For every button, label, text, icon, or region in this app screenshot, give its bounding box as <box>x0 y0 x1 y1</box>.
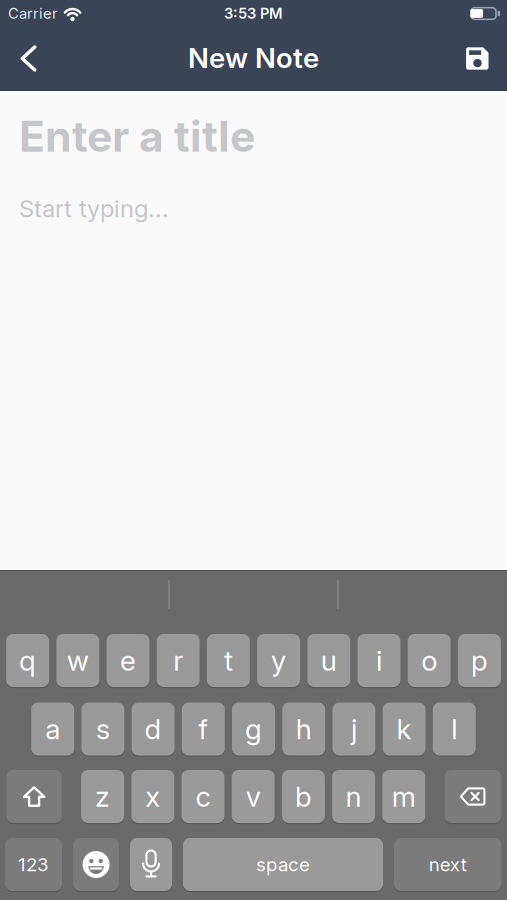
staticText: Enter a title <box>19 111 255 161</box>
staticText: x <box>145 780 160 813</box>
button[interactable]: m <box>382 770 425 823</box>
button[interactable]: j <box>332 702 375 755</box>
button[interactable]: b <box>282 770 325 823</box>
staticText: z <box>95 780 110 813</box>
staticText: n <box>346 780 362 813</box>
button[interactable]: o <box>408 634 451 687</box>
staticText: q <box>19 644 36 677</box>
staticText: j <box>351 712 357 745</box>
staticText: i <box>376 644 382 677</box>
button[interactable]: g <box>232 702 275 755</box>
button[interactable]: q <box>6 634 49 687</box>
staticText: c <box>195 780 210 813</box>
staticText: l <box>451 712 457 745</box>
button[interactable]: i <box>357 634 400 687</box>
button[interactable]: h <box>282 702 325 755</box>
button[interactable]: p <box>458 634 501 687</box>
staticText: h <box>296 712 312 745</box>
button[interactable]: Shift <box>6 770 62 823</box>
button[interactable]: z <box>81 770 124 823</box>
staticText: r <box>173 644 183 677</box>
staticText: d <box>145 712 162 745</box>
button[interactable]: s <box>81 702 124 755</box>
button[interactable]: Emoji <box>73 838 119 891</box>
staticText: f <box>198 712 208 745</box>
button[interactable]: r <box>157 634 200 687</box>
staticText: a <box>45 712 60 745</box>
staticText: s <box>96 712 110 745</box>
button[interactable]: Delete <box>444 770 501 823</box>
button[interactable]: y <box>257 634 300 687</box>
staticText: t <box>224 644 233 677</box>
button[interactable]: k <box>383 702 426 755</box>
staticText: New Note <box>188 41 319 74</box>
staticText: b <box>295 780 312 813</box>
button[interactable]: u <box>307 634 350 687</box>
staticText: space <box>256 853 310 875</box>
staticText: o <box>421 644 437 677</box>
button[interactable]: e <box>106 634 149 687</box>
button[interactable]: next <box>394 838 501 891</box>
button[interactable]: Save <box>466 35 507 82</box>
button[interactable]: t <box>207 634 250 687</box>
staticText: next <box>429 853 467 875</box>
button[interactable]: 123 <box>5 838 62 891</box>
staticText: Carrier <box>8 5 58 22</box>
staticText: Start typing... <box>19 194 169 223</box>
staticText: 3:53 PM <box>224 5 283 22</box>
staticText: w <box>67 644 89 677</box>
button[interactable]: space <box>183 838 383 891</box>
button[interactable]: n <box>332 770 375 823</box>
button[interactable]: Dictate <box>130 838 172 891</box>
staticText: e <box>120 644 136 677</box>
button[interactable]: Back <box>0 33 37 84</box>
staticText: v <box>246 780 261 813</box>
button[interactable]: l <box>433 702 476 755</box>
button[interactable]: a <box>31 702 74 755</box>
staticText: g <box>245 712 262 745</box>
staticText: m <box>392 780 416 813</box>
button[interactable]: c <box>181 770 224 823</box>
staticText: p <box>471 644 488 677</box>
staticText: u <box>321 644 337 677</box>
button[interactable]: f <box>182 702 225 755</box>
button[interactable]: w <box>56 634 99 687</box>
staticText: k <box>397 712 412 745</box>
button[interactable]: x <box>131 770 174 823</box>
button[interactable]: d <box>132 702 175 755</box>
button[interactable]: v <box>232 770 275 823</box>
staticText: 123 <box>18 853 49 875</box>
staticText: y <box>271 644 286 677</box>
